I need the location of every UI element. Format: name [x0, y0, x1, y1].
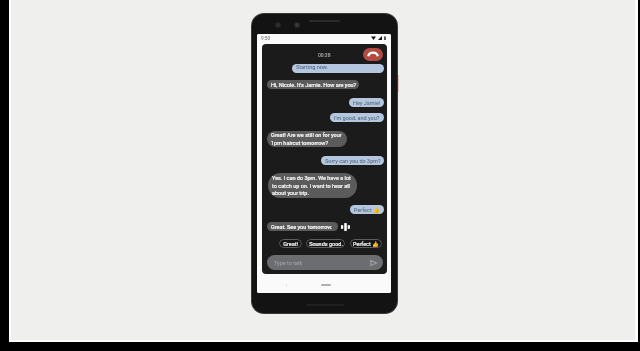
button[interactable]: Great! Are we still on for your 1pm hair…: [267, 131, 347, 147]
button[interactable]: Hi, Nicole. It's Jamie. How are you?: [267, 80, 359, 89]
button[interactable]: Sorry can you do 3pm?: [321, 156, 384, 165]
button[interactable]: End call: [363, 48, 383, 61]
staticText: 9:50: [261, 36, 271, 42]
staticText: Starting now.: [296, 64, 329, 70]
button[interactable]: Perfect 👍: [350, 205, 384, 214]
button[interactable]: Sounds good.: [306, 239, 345, 248]
staticText: Type to talk: [274, 260, 303, 266]
button[interactable]: Great. See you tomorrow.: [267, 222, 338, 231]
other: Play audio message: [341, 223, 350, 231]
button[interactable]: Home: [321, 284, 331, 286]
staticText: Sounds good.: [309, 241, 343, 247]
staticText: Great. See you tomorrow.: [271, 224, 333, 230]
staticText: Great! Are we still on for your 1pm hair…: [271, 132, 342, 146]
button[interactable]: Type to talk: [267, 255, 383, 270]
button[interactable]: Great!: [279, 239, 302, 248]
button[interactable]: I'm good, and you?: [330, 113, 384, 122]
button[interactable]: Perfect 👍: [350, 239, 382, 248]
staticText: Perfect 👍: [354, 207, 380, 213]
staticText: Great!: [283, 241, 298, 247]
button[interactable]: Starting now.: [292, 64, 384, 73]
staticText: Sorry can you do 3pm?: [325, 158, 381, 164]
other: Send: [370, 260, 377, 266]
button[interactable]: Hey Jamie!: [349, 98, 384, 107]
button[interactable]: Yes. I can do 3pm. We have a lot to catc…: [268, 173, 357, 198]
staticText: Hey Jamie!: [353, 100, 381, 106]
staticText: Hi, Nicole. It's Jamie. How are you?: [271, 82, 357, 88]
staticText: Perfect 👍: [353, 241, 379, 247]
staticText: Yes. I can do 3pm. We have a lot to catc…: [272, 175, 351, 196]
staticText: 00:38: [318, 52, 331, 58]
staticText: I'm good, and you?: [334, 115, 380, 121]
